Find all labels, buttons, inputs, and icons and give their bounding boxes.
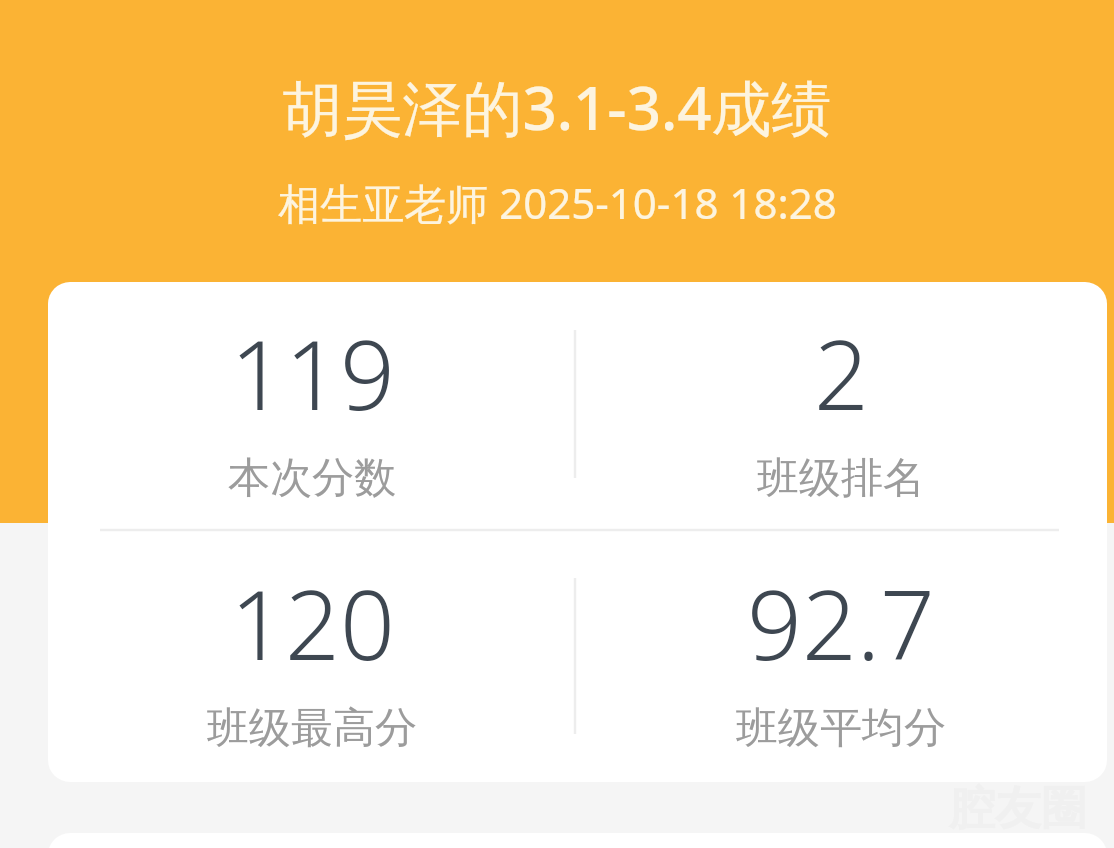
staticText: 班级排名 bbox=[757, 452, 925, 505]
button[interactable]: 119 bbox=[48, 282, 1107, 782]
staticText: 腔友圈 bbox=[949, 780, 1087, 838]
staticText: 相生亚老师 2025-10-18 18:28 bbox=[278, 174, 837, 231]
button[interactable]: 119 bbox=[228, 307, 396, 505]
button[interactable]: 2 bbox=[757, 307, 925, 505]
staticText: 本次分数 bbox=[228, 452, 396, 505]
button[interactable]: 120 bbox=[207, 557, 417, 755]
staticText: 120 bbox=[230, 557, 395, 688]
button[interactable]: 92.7 bbox=[736, 557, 946, 755]
staticText: 2 bbox=[814, 307, 869, 438]
staticText: 胡昊泽的3.1-3.4成绩 bbox=[282, 66, 832, 148]
staticText: 119 bbox=[230, 307, 395, 438]
staticText: 班级最高分 bbox=[207, 702, 417, 755]
staticText: 班级平均分 bbox=[736, 702, 946, 755]
staticText: 92.7 bbox=[747, 557, 935, 688]
